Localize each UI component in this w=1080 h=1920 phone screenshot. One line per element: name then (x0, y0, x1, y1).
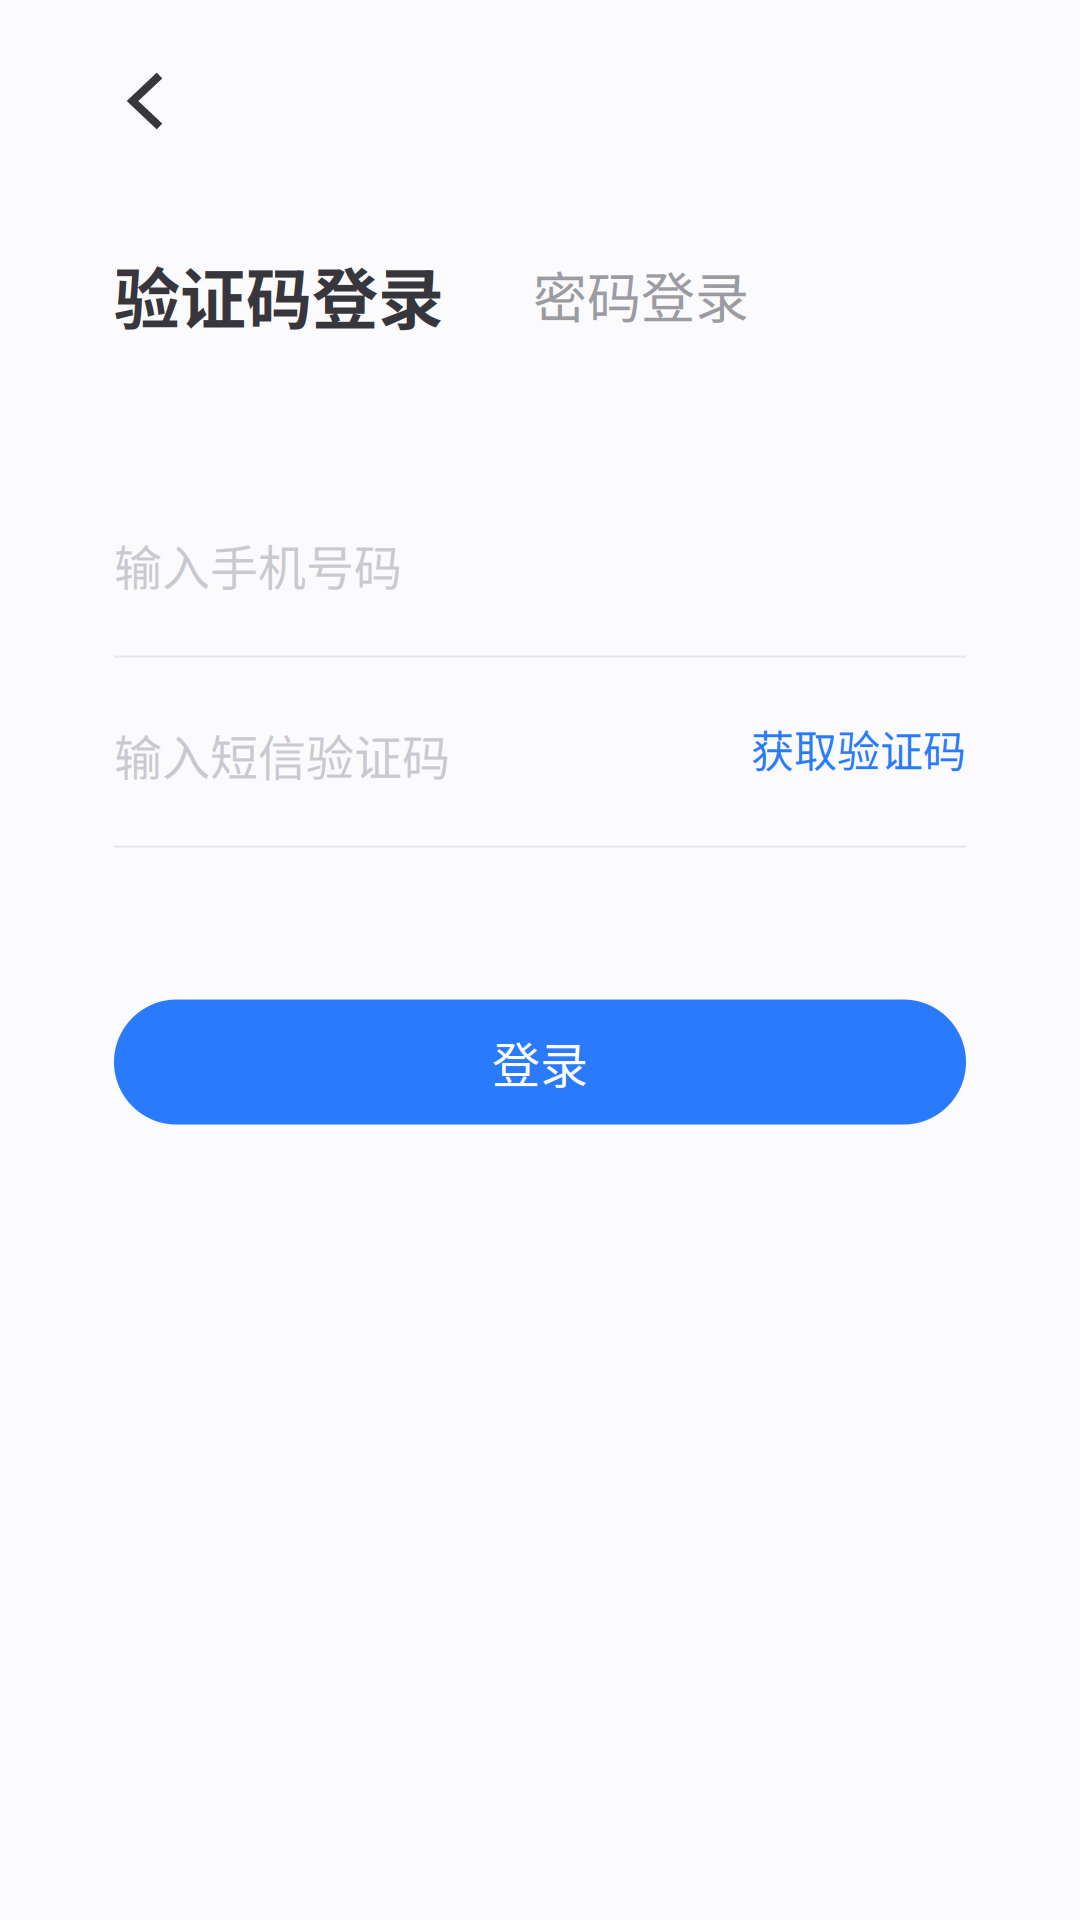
button[interactable]: 输入手机号码 (114, 530, 402, 599)
button[interactable]: Back (90, 45, 202, 157)
staticText: 验证码登录 (114, 247, 444, 343)
button[interactable]: 获取验证码 (751, 723, 966, 786)
button[interactable]: 验证码登录 (114, 247, 444, 343)
staticText: 输入短信验证码 (114, 720, 450, 789)
staticText: 密码登录 (533, 256, 749, 334)
staticText: 输入手机号码 (114, 530, 402, 599)
button[interactable]: 密码登录 (533, 256, 749, 334)
staticText: 获取验证码 (751, 717, 966, 780)
button[interactable]: 登录 (114, 1000, 966, 1125)
staticText: 登录 (492, 1027, 588, 1097)
button[interactable]: 输入短信验证码 (114, 720, 450, 789)
